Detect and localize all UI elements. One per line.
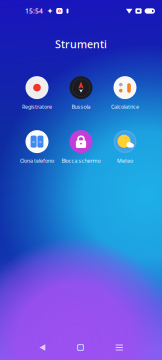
button[interactable]: Clona telefono bbox=[15, 130, 59, 164]
button[interactable]: Back bbox=[0, 339, 53, 356]
button[interactable]: Home bbox=[53, 339, 107, 356]
staticText: Calcolatrice bbox=[111, 103, 139, 110]
button[interactable]: Calcolatrice bbox=[103, 76, 147, 110]
staticText: 15:54 bbox=[25, 7, 43, 15]
staticText: Bussola bbox=[71, 103, 90, 110]
button[interactable]: Blocca schermo bbox=[59, 130, 103, 164]
staticText: Clona telefono bbox=[20, 157, 54, 164]
button[interactable]: Meteo bbox=[103, 130, 147, 164]
staticText: Blocca schermo bbox=[61, 157, 100, 164]
staticText: Meteo bbox=[117, 157, 133, 164]
button[interactable]: Bussola bbox=[59, 76, 103, 110]
staticText: Registratore bbox=[22, 103, 52, 110]
staticText: Strumenti bbox=[55, 37, 107, 51]
button[interactable]: Registratore bbox=[15, 76, 59, 110]
button[interactable]: Recents bbox=[107, 339, 162, 356]
